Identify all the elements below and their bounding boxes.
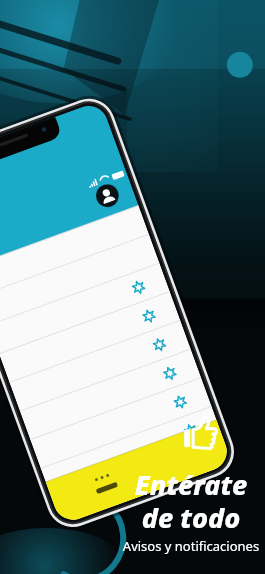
button[interactable]: Entérate de todo. Avisos y notificacione… [0,0,265,574]
